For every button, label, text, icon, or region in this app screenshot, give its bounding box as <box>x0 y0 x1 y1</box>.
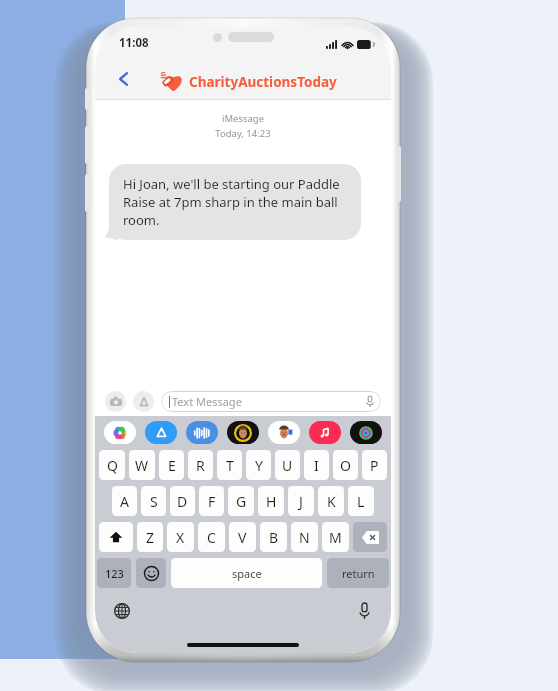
staticText: CharityAuctionsToday <box>189 73 337 91</box>
button[interactable]: App 5 <box>268 421 300 444</box>
button[interactable]: W <box>129 450 155 480</box>
staticText: M <box>329 528 342 547</box>
button[interactable]: G <box>228 486 254 516</box>
staticText: E <box>168 456 176 475</box>
staticText: P <box>370 456 379 475</box>
button[interactable]: Z <box>137 522 163 552</box>
button[interactable]: I <box>304 450 329 480</box>
staticText: J <box>299 492 303 511</box>
staticText: Hi Joan, we'll be starting our Paddle Ra… <box>123 175 347 229</box>
button[interactable]: App 2 <box>145 421 177 444</box>
button[interactable]: return <box>327 558 389 588</box>
staticText: O <box>340 456 351 475</box>
button[interactable]: CharityAuctionsToday <box>161 71 337 92</box>
button[interactable]: Shift <box>99 522 133 552</box>
button[interactable]: V <box>229 522 256 552</box>
button[interactable]: P <box>362 450 387 480</box>
button[interactable]: Backspace <box>353 522 387 552</box>
button[interactable]: App 1 <box>104 421 136 444</box>
staticText: 11:08 <box>119 35 149 51</box>
button[interactable]: space <box>171 558 322 588</box>
button[interactable]: E <box>159 450 184 480</box>
button[interactable]: F <box>199 486 224 516</box>
button[interactable]: L <box>348 486 374 516</box>
staticText: iMessage <box>95 112 391 125</box>
staticText: X <box>176 528 185 547</box>
button[interactable]: Q <box>99 450 125 480</box>
button[interactable]: Dictate <box>353 600 375 622</box>
button[interactable]: S <box>141 486 166 516</box>
button[interactable]: K <box>318 486 344 516</box>
button[interactable]: O <box>333 450 358 480</box>
button[interactable]: R <box>188 450 213 480</box>
button[interactable]: App 4 <box>227 421 259 444</box>
staticText: K <box>327 492 336 511</box>
staticText: T <box>226 456 234 475</box>
button[interactable]: U <box>275 450 300 480</box>
button[interactable]: N <box>291 522 318 552</box>
staticText: N <box>299 528 310 547</box>
button[interactable]: B <box>260 522 287 552</box>
button[interactable]: X <box>167 522 194 552</box>
button[interactable]: Change keyboard <box>111 600 133 622</box>
button[interactable]: App 6 <box>309 421 341 444</box>
staticText: Z <box>146 528 155 547</box>
staticText: C <box>207 528 216 547</box>
button[interactable]: H <box>258 486 284 516</box>
staticText: W <box>135 456 149 475</box>
staticText: L <box>357 492 365 511</box>
button[interactable]: T <box>217 450 242 480</box>
button[interactable]: Apps <box>133 391 154 412</box>
button[interactable]: Back <box>109 64 139 94</box>
staticText: V <box>238 528 247 547</box>
button[interactable]: App 7 <box>350 421 382 444</box>
staticText: R <box>196 456 205 475</box>
staticText: H <box>266 492 277 511</box>
button[interactable]: J <box>288 486 314 516</box>
button[interactable]: Y <box>246 450 271 480</box>
staticText: B <box>269 528 279 547</box>
button[interactable]: App 3 <box>186 421 218 444</box>
staticText: F <box>208 492 216 511</box>
button[interactable]: Camera <box>105 391 126 412</box>
button[interactable]: A <box>112 486 137 516</box>
button[interactable]: M <box>322 522 349 552</box>
button[interactable]: Hi Joan, we'll be starting our Paddle Ra… <box>109 164 361 240</box>
staticText: U <box>282 456 293 475</box>
staticText: Text Message <box>172 394 366 409</box>
staticText: S <box>150 492 158 511</box>
staticText: Y <box>255 456 263 475</box>
staticText: I <box>314 456 319 475</box>
staticText: 123 <box>105 566 124 581</box>
button[interactable]: 123 <box>97 558 131 588</box>
staticText: G <box>236 492 247 511</box>
button[interactable]: D <box>170 486 195 516</box>
staticText: D <box>177 492 188 511</box>
staticText: space <box>232 566 262 581</box>
button[interactable]: Text Message <box>161 391 381 412</box>
staticText: return <box>342 566 375 581</box>
button[interactable]: C <box>198 522 225 552</box>
staticText: Today, 14:23 <box>95 127 391 140</box>
staticText: A <box>120 492 129 511</box>
staticText: Q <box>107 456 118 475</box>
button[interactable]: Emoji <box>136 558 166 588</box>
